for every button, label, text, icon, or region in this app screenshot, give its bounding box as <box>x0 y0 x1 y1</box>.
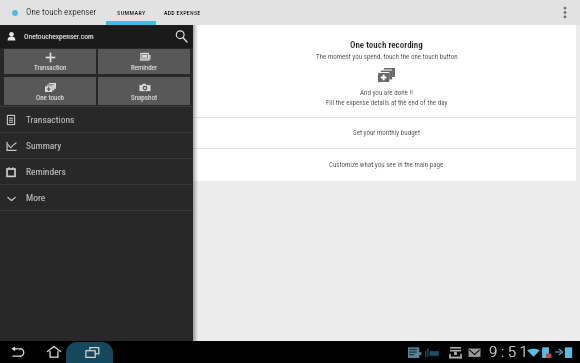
button[interactable]: Transactions <box>0 107 193 132</box>
button[interactable]: Transaction <box>4 49 96 74</box>
staticText: Reminders <box>26 166 66 177</box>
staticText: Set your monthly budget <box>353 129 420 137</box>
staticText: Transaction <box>34 64 67 72</box>
staticText: And you are done !! <box>360 89 413 97</box>
button[interactable]: Home <box>36 341 72 363</box>
button[interactable]: Reminders <box>0 159 193 184</box>
staticText: One touch recording <box>350 40 423 51</box>
button[interactable]: Summary <box>0 133 193 158</box>
staticText: Customize what you see in the main page <box>329 161 444 169</box>
button[interactable]: Reminder <box>98 49 190 74</box>
staticText: The moment you spend, touch the one touc… <box>316 53 458 61</box>
staticText: Reminder <box>131 64 158 72</box>
button[interactable]: Search <box>170 25 193 48</box>
button[interactable]: More <box>0 185 193 210</box>
button[interactable]: ADD EXPENSE <box>164 0 201 25</box>
staticText: Fill the expense details at the end of t… <box>326 99 448 107</box>
staticText: Onetouchexpenser.com <box>24 32 94 41</box>
staticText: More <box>26 192 46 203</box>
button[interactable]: Snapshot <box>98 77 190 105</box>
staticText: Transactions <box>26 114 75 125</box>
staticText: One touch <box>36 94 64 102</box>
staticText: One touch expenser <box>26 7 97 18</box>
staticText: Snapshot <box>131 94 157 102</box>
button[interactable]: More options <box>557 0 573 25</box>
staticText: ADD EXPENSE <box>164 9 201 16</box>
staticText: 9:51 <box>489 343 532 361</box>
staticText: Summary <box>26 140 62 151</box>
staticText: SUMMARY <box>117 9 146 16</box>
button[interactable]: SUMMARY <box>117 0 146 25</box>
button[interactable]: Customize what you see in the main page <box>193 149 576 181</box>
button[interactable]: Back <box>0 341 36 363</box>
button[interactable]: Set your monthly budget <box>193 118 576 148</box>
button[interactable]: One touch <box>4 77 96 105</box>
button[interactable]: Recents <box>72 341 113 363</box>
